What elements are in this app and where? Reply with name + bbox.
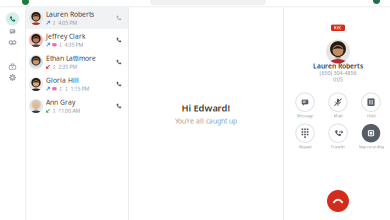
staticText: 11:00 AM xyxy=(58,107,80,114)
staticText: Message xyxy=(297,113,313,118)
button[interactable]: Lauren Roberts xyxy=(26,7,128,29)
staticText: Ann Gray xyxy=(46,98,75,107)
staticText: Ethan Lattimore xyxy=(46,54,96,63)
button[interactable]: Keypad xyxy=(288,123,321,150)
button[interactable]: Voicemail xyxy=(1,37,23,47)
staticText: Lauren Roberts xyxy=(313,62,363,70)
button[interactable]: Ethan Lattimore xyxy=(26,51,128,73)
button[interactable]: Gloria Hill xyxy=(26,73,128,95)
button[interactable]: Calls xyxy=(1,11,23,27)
staticText: Lauren Roberts xyxy=(46,10,94,19)
button[interactable]: Message xyxy=(288,92,321,119)
button[interactable]: Settings xyxy=(1,72,23,82)
button[interactable]: Ann Gray xyxy=(26,95,128,117)
staticText: 0:05 xyxy=(333,76,343,83)
button[interactable]: Stop recording xyxy=(354,123,387,150)
staticText: 1:15 PM xyxy=(71,85,90,92)
staticText: 4:35 PM xyxy=(65,41,84,48)
staticText: Transfer xyxy=(330,144,345,149)
staticText: (650) 304-4856 xyxy=(319,69,356,77)
button[interactable]: Messages xyxy=(1,26,23,36)
button[interactable]: Hold xyxy=(354,92,387,119)
staticText: Keypad xyxy=(299,144,311,149)
staticText: You're all caught up xyxy=(175,116,237,125)
button[interactable]: Contacts xyxy=(1,61,23,71)
button[interactable]: End call xyxy=(325,188,351,214)
staticText: Stop recording xyxy=(358,144,383,149)
button[interactable]: Transfer xyxy=(321,123,354,150)
staticText: Jeffrey Clark xyxy=(46,32,86,41)
staticText: 2:35 PM xyxy=(58,63,77,70)
staticText: REC xyxy=(334,25,342,30)
staticText: Hold xyxy=(367,113,375,118)
button[interactable]: Mute xyxy=(321,92,354,119)
staticText: Hi Edward! xyxy=(181,102,230,114)
staticText: Gloria Hill xyxy=(46,76,79,85)
staticText: 4:05 PM xyxy=(58,19,77,26)
staticText: Mute xyxy=(333,113,342,118)
button[interactable]: Jeffrey Clark xyxy=(26,29,128,51)
